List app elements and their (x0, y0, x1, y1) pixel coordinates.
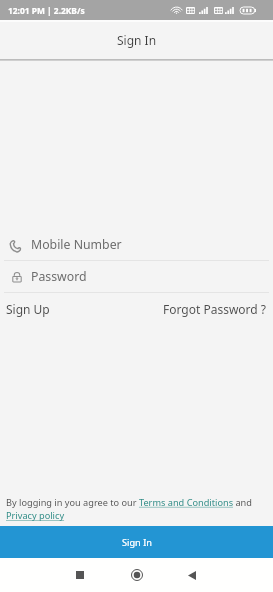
staticText: Forgot Password ? (163, 301, 267, 317)
button[interactable]: Recent apps (64, 559, 96, 591)
staticText: By logging in you agree to our Terms and… (6, 496, 267, 522)
staticText: Mobile Number (31, 236, 122, 253)
staticText: Sign In (117, 32, 157, 48)
staticText: Password (31, 268, 87, 285)
button[interactable]: Mobile Number (0, 229, 273, 261)
button[interactable]: Home (121, 559, 153, 591)
button[interactable]: Back (176, 559, 208, 591)
button[interactable]: Sign In (0, 526, 273, 558)
button[interactable]: Forgot Password ? (163, 301, 267, 317)
staticText: 12:01 PM | 2.2KB/s (8, 5, 85, 16)
staticText: Sign Up (6, 301, 50, 317)
button[interactable]: Password (0, 261, 273, 293)
staticText: Sign In (122, 536, 152, 549)
button[interactable]: By logging in you agree to our Terms and… (6, 496, 267, 522)
button[interactable]: Sign Up (6, 301, 50, 317)
